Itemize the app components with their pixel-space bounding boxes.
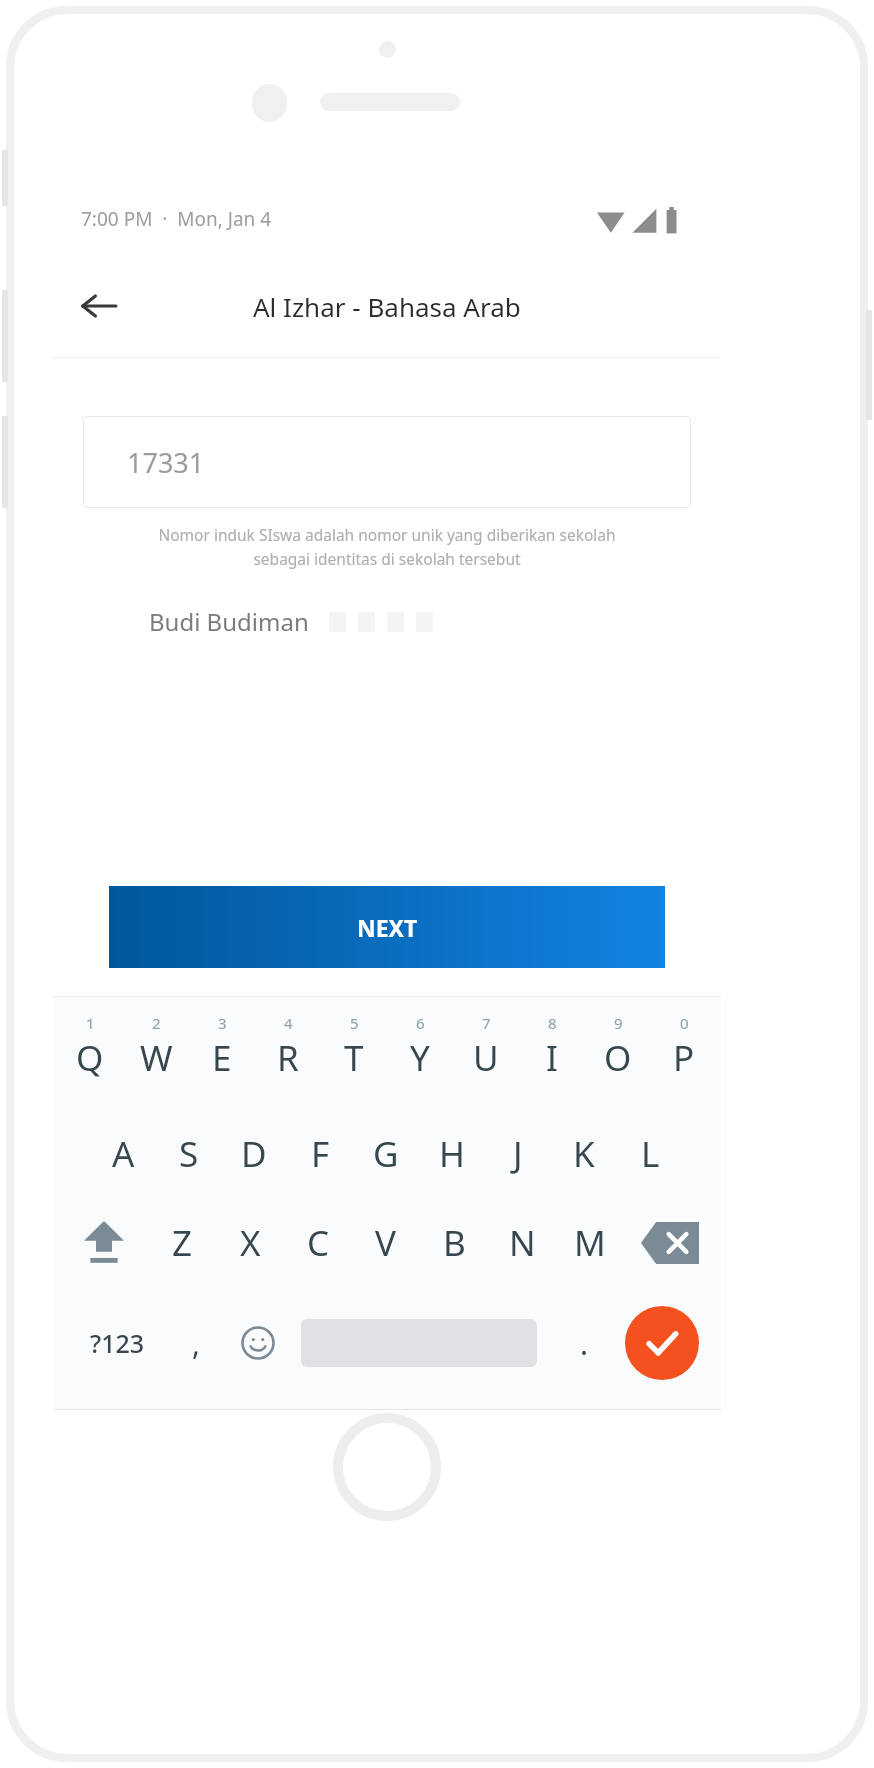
- staticText: Nomor induk SIswa adalah nomor unik yang…: [89, 524, 685, 569]
- button[interactable]: 3: [189, 1013, 255, 1105]
- button[interactable]: 9: [585, 1013, 651, 1105]
- button[interactable]: N: [488, 1207, 556, 1279]
- staticText: ,: [192, 1323, 201, 1364]
- button[interactable]: .: [549, 1301, 619, 1385]
- staticText: 7: [482, 1013, 491, 1033]
- staticText: ?123: [90, 1326, 145, 1360]
- staticText: 17331: [127, 444, 205, 481]
- staticText: Budi Budiman: [149, 605, 309, 638]
- staticText: 1: [86, 1013, 95, 1033]
- button[interactable]: Backspace: [624, 1207, 715, 1279]
- button[interactable]: 6: [387, 1013, 453, 1105]
- button[interactable]: L: [617, 1119, 683, 1189]
- staticText: E: [212, 1034, 232, 1082]
- button[interactable]: Emoji: [227, 1301, 289, 1385]
- button[interactable]: J: [485, 1119, 551, 1189]
- button[interactable]: B: [420, 1207, 488, 1279]
- staticText: Q: [76, 1034, 104, 1082]
- button[interactable]: 4: [255, 1013, 321, 1105]
- button[interactable]: X: [216, 1207, 284, 1279]
- staticText: I: [546, 1034, 558, 1082]
- staticText: A: [112, 1130, 135, 1178]
- staticText: F: [311, 1130, 330, 1178]
- staticText: 0: [680, 1013, 689, 1033]
- staticText: X: [240, 1219, 261, 1267]
- staticText: D: [241, 1130, 267, 1178]
- staticText: U: [473, 1034, 499, 1082]
- staticText: 4: [284, 1013, 293, 1033]
- staticText: H: [439, 1130, 465, 1178]
- staticText: M: [574, 1219, 606, 1267]
- staticText: 2: [152, 1013, 161, 1033]
- button[interactable]: Back: [67, 274, 131, 338]
- button[interactable]: ?123: [69, 1301, 165, 1385]
- staticText: P: [673, 1034, 695, 1082]
- button[interactable]: C: [284, 1207, 352, 1279]
- staticText: 3: [218, 1013, 227, 1033]
- staticText: W: [140, 1034, 173, 1082]
- button[interactable]: S: [156, 1119, 221, 1189]
- staticText: 5: [350, 1013, 359, 1033]
- button[interactable]: V: [352, 1207, 420, 1279]
- button[interactable]: 1: [57, 1013, 123, 1105]
- button[interactable]: H: [419, 1119, 485, 1189]
- button[interactable]: ,: [165, 1301, 227, 1385]
- button[interactable]: 7: [453, 1013, 519, 1105]
- button[interactable]: D: [221, 1119, 287, 1189]
- button[interactable]: 8: [519, 1013, 585, 1105]
- staticText: B: [443, 1219, 466, 1267]
- button[interactable]: 0: [651, 1013, 717, 1105]
- staticText: Y: [410, 1034, 430, 1082]
- staticText: .: [580, 1323, 589, 1364]
- button[interactable]: 17331: [83, 416, 691, 508]
- button[interactable]: Z: [149, 1207, 216, 1279]
- button[interactable]: F: [287, 1119, 353, 1189]
- staticText: 9: [614, 1013, 623, 1033]
- button[interactable]: Enter: [625, 1306, 699, 1380]
- staticText: 8: [548, 1013, 557, 1033]
- button[interactable]: NEXT: [109, 886, 665, 968]
- staticText: G: [373, 1130, 399, 1178]
- button[interactable]: 2: [123, 1013, 189, 1105]
- button[interactable]: 5: [321, 1013, 387, 1105]
- staticText: 7:00 PM · Mon, Jan 4: [81, 206, 272, 232]
- staticText: Z: [172, 1219, 193, 1267]
- staticText: S: [179, 1130, 199, 1178]
- staticText: J: [513, 1130, 523, 1178]
- staticText: 6: [416, 1013, 425, 1033]
- staticText: Al Izhar - Bahasa Arab: [253, 289, 521, 324]
- staticText: NEXT: [357, 912, 418, 943]
- staticText: K: [573, 1130, 595, 1178]
- staticText: C: [307, 1219, 330, 1267]
- staticText: V: [375, 1219, 397, 1267]
- button[interactable]: A: [91, 1119, 156, 1189]
- button[interactable]: M: [556, 1207, 624, 1279]
- staticText: R: [277, 1034, 299, 1082]
- button[interactable]: K: [551, 1119, 617, 1189]
- button[interactable]: G: [353, 1119, 419, 1189]
- staticText: O: [604, 1034, 632, 1082]
- button[interactable]: Shift: [59, 1207, 149, 1279]
- staticText: T: [344, 1034, 364, 1082]
- staticText: L: [641, 1130, 660, 1178]
- staticText: N: [509, 1219, 536, 1267]
